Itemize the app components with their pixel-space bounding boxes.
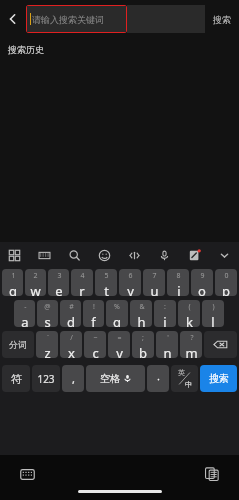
button[interactable]: ) — [202, 300, 224, 327]
button[interactable]: Notes — [179, 242, 209, 269]
button[interactable]: 2 — [25, 269, 46, 296]
button[interactable]: ; — [132, 331, 154, 358]
staticText: 中 — [185, 380, 192, 389]
staticText: 9 — [200, 271, 205, 281]
staticText: z — [44, 344, 51, 358]
staticText: o — [198, 282, 206, 296]
staticText: % — [114, 302, 120, 312]
staticText: @ — [44, 302, 51, 312]
staticText: b — [139, 344, 147, 358]
staticText: 7 — [152, 271, 157, 281]
button[interactable]: 空格 — [86, 365, 145, 392]
staticText: s — [44, 313, 51, 327]
button[interactable]: Keyboard switcher — [16, 463, 38, 485]
staticText: 符 — [11, 372, 22, 386]
staticText: 8 — [176, 271, 181, 281]
button[interactable]: : — [154, 300, 176, 327]
staticText: 123 — [37, 372, 55, 386]
button[interactable]: & — [130, 300, 152, 327]
button[interactable]: ~ — [84, 331, 106, 358]
button[interactable]: 3 — [48, 269, 69, 296]
button[interactable]: 7 — [143, 269, 165, 296]
button[interactable]: Back — [0, 0, 26, 38]
staticText: p — [222, 282, 230, 296]
staticText: f — [91, 313, 96, 327]
button[interactable]: = — [108, 331, 130, 358]
staticText: c — [92, 344, 99, 358]
staticText: 0 — [224, 271, 229, 281]
staticText: · — [157, 371, 160, 386]
staticText: i — [177, 282, 181, 296]
button[interactable]: ' — [156, 331, 178, 358]
button[interactable]: 1 — [2, 269, 23, 296]
staticText: h — [137, 313, 146, 327]
staticText: w — [30, 282, 41, 296]
button[interactable]: Voice input — [149, 242, 179, 269]
button[interactable]: 搜索 — [200, 365, 237, 392]
staticText: 请输入搜索关键词 — [32, 14, 104, 25]
button[interactable]: Switch English Chinese — [171, 365, 198, 392]
staticText: 空格 — [100, 372, 120, 385]
button[interactable]: 123 — [32, 365, 60, 392]
staticText: ; — [142, 333, 144, 343]
button[interactable]: 符 — [2, 365, 30, 392]
staticText: 6 — [128, 271, 133, 281]
button[interactable]: Translate — [119, 242, 149, 269]
staticText: v — [116, 344, 123, 358]
button[interactable]: Clipboard — [201, 463, 223, 485]
button[interactable]: / — [60, 331, 82, 358]
staticText: ' — [167, 333, 169, 343]
button[interactable]: Collapse keyboard — [209, 242, 239, 269]
button[interactable]: 搜索 — [205, 0, 239, 38]
button[interactable]: % — [106, 300, 128, 327]
staticText: 2 — [33, 271, 38, 281]
button[interactable]: ? — [180, 331, 202, 358]
staticText: 英 — [178, 368, 185, 377]
staticText: m — [185, 344, 198, 358]
staticText: ~ — [93, 333, 98, 343]
button[interactable]: 0 — [215, 269, 237, 296]
staticText: l — [211, 313, 215, 327]
staticText: 搜索历史 — [8, 44, 44, 55]
button[interactable]: ` — [36, 331, 58, 358]
staticText: = — [117, 333, 122, 343]
button[interactable]: 分词 — [2, 331, 34, 358]
button[interactable]: 5 — [95, 269, 117, 296]
button[interactable]: # — [60, 300, 81, 327]
staticText: y — [127, 282, 134, 296]
staticText: ! — [93, 302, 95, 312]
staticText: / — [70, 333, 73, 343]
button[interactable]: · — [147, 365, 169, 392]
button[interactable]: Apps — [0, 242, 29, 269]
staticText: , — [72, 371, 75, 386]
button[interactable]: 9 — [191, 269, 213, 296]
staticText: & — [139, 302, 145, 312]
staticText: ` — [47, 333, 49, 343]
staticText: ( — [188, 302, 191, 312]
button[interactable]: ! — [83, 300, 104, 327]
staticText: k — [186, 313, 193, 327]
staticText: 4 — [80, 271, 85, 281]
staticText: g — [113, 313, 121, 327]
staticText: 分词 — [9, 339, 27, 350]
button[interactable]: , — [62, 365, 84, 392]
button[interactable]: ( — [178, 300, 200, 327]
button[interactable]: 请输入搜索关键词 — [26, 5, 127, 33]
button[interactable]: - — [14, 300, 35, 327]
button[interactable]: Backspace — [204, 331, 237, 358]
staticText: 3 — [57, 271, 62, 281]
staticText: x — [68, 344, 75, 358]
button[interactable]: Emoji — [89, 242, 119, 269]
staticText: n — [163, 344, 172, 358]
button[interactable]: 8 — [167, 269, 189, 296]
button[interactable]: 6 — [119, 269, 141, 296]
button[interactable]: @ — [37, 300, 58, 327]
button[interactable]: Search — [59, 242, 89, 269]
staticText: 搜索 — [213, 14, 231, 25]
staticText: ) — [212, 302, 215, 312]
staticText: d — [67, 313, 75, 327]
button[interactable]: 4 — [71, 269, 93, 296]
staticText: a — [21, 313, 29, 327]
button[interactable]: Keyboard layout — [29, 242, 59, 269]
staticText: t — [104, 282, 109, 296]
